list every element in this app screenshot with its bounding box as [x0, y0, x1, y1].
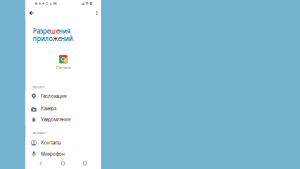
button[interactable]: Контакты — [25, 137, 101, 148]
staticText: Контакты — [41, 140, 61, 146]
staticText: Запрещено — [32, 131, 46, 135]
staticText: Разрешено — [32, 85, 45, 89]
button[interactable]: Геолокация — [25, 91, 101, 102]
button[interactable]: Главный экран — [57, 158, 68, 169]
staticText: Разрешения — [33, 27, 71, 35]
button[interactable]: Микрофон — [25, 148, 101, 160]
button[interactable]: Камера — [25, 103, 101, 114]
staticText: Chrome — [56, 65, 71, 70]
staticText: Микрофон — [41, 151, 65, 157]
staticText: Камера — [41, 105, 56, 111]
button[interactable]: Обзор — [79, 158, 90, 169]
staticText: приложений — [33, 34, 73, 43]
button[interactable]: Ещё — [91, 7, 102, 19]
button[interactable]: Назад — [26, 7, 37, 19]
button[interactable]: Уведомления — [25, 114, 101, 125]
staticText: Уведомления — [41, 117, 71, 123]
staticText: Геолокация — [41, 93, 67, 99]
button[interactable]: Назад — [35, 158, 46, 169]
